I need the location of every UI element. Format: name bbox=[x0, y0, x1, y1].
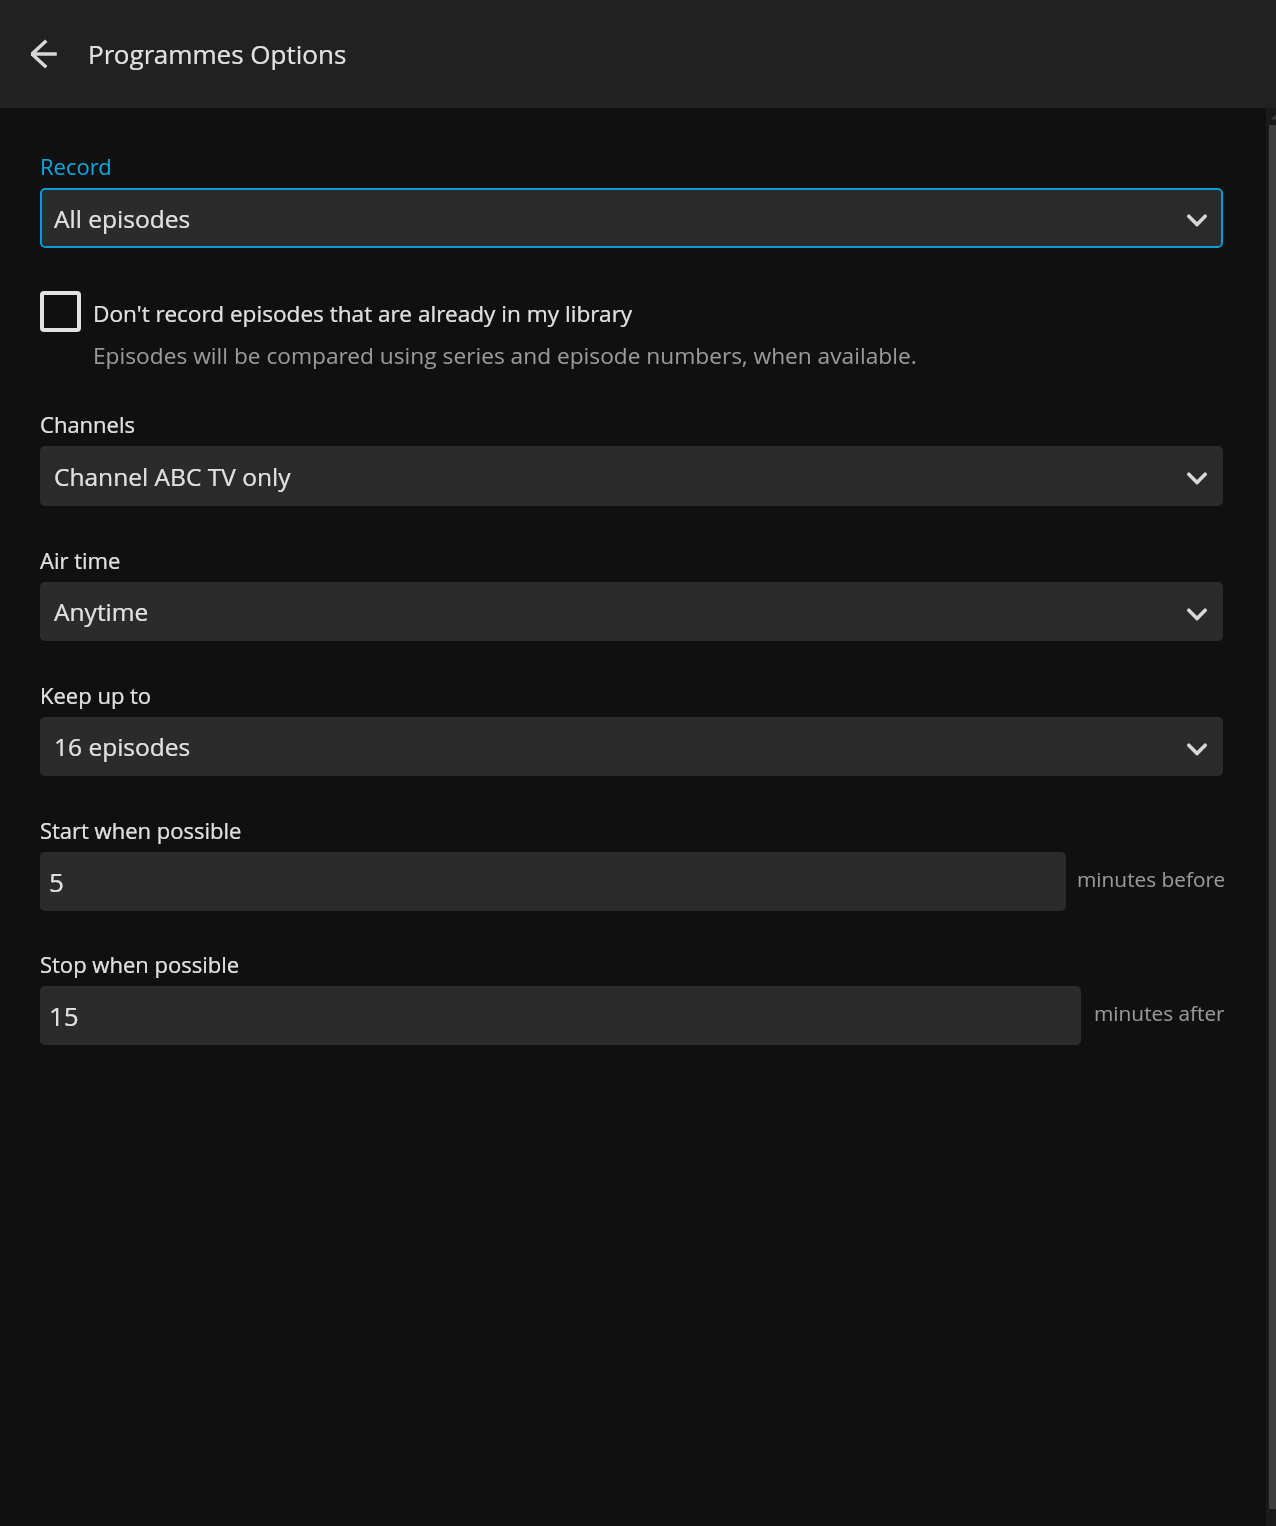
staticText: Start when possible bbox=[40, 815, 242, 845]
staticText: 16 episodes bbox=[54, 730, 191, 763]
staticText: Don't record episodes that are already i… bbox=[93, 298, 633, 329]
staticText: Programmes Options bbox=[88, 36, 347, 71]
button[interactable]: 15 bbox=[40, 986, 1081, 1045]
button[interactable]: All episodes bbox=[40, 188, 1223, 248]
staticText: Record bbox=[40, 151, 112, 181]
button[interactable]: Channel ABC TV only bbox=[40, 446, 1223, 506]
staticText: 15 bbox=[49, 998, 79, 1033]
staticText: Air time bbox=[40, 545, 121, 575]
staticText: 5 bbox=[49, 864, 64, 899]
staticText: minutes before bbox=[1077, 865, 1226, 893]
staticText: minutes after bbox=[1094, 999, 1225, 1027]
staticText: Channel ABC TV only bbox=[54, 460, 291, 493]
staticText: All episodes bbox=[54, 202, 191, 235]
staticText: Keep up to bbox=[40, 680, 152, 710]
staticText: Anytime bbox=[54, 595, 149, 628]
staticText: Channels bbox=[40, 409, 136, 439]
button[interactable]: 5 bbox=[40, 852, 1066, 911]
button[interactable]: Don't record episodes that are already i… bbox=[40, 291, 81, 332]
staticText: Episodes will be compared using series a… bbox=[93, 340, 917, 371]
button[interactable]: Anytime bbox=[40, 582, 1223, 641]
button[interactable]: 16 episodes bbox=[40, 717, 1223, 776]
staticText: Stop when possible bbox=[40, 949, 240, 979]
button[interactable]: Back bbox=[16, 26, 72, 82]
